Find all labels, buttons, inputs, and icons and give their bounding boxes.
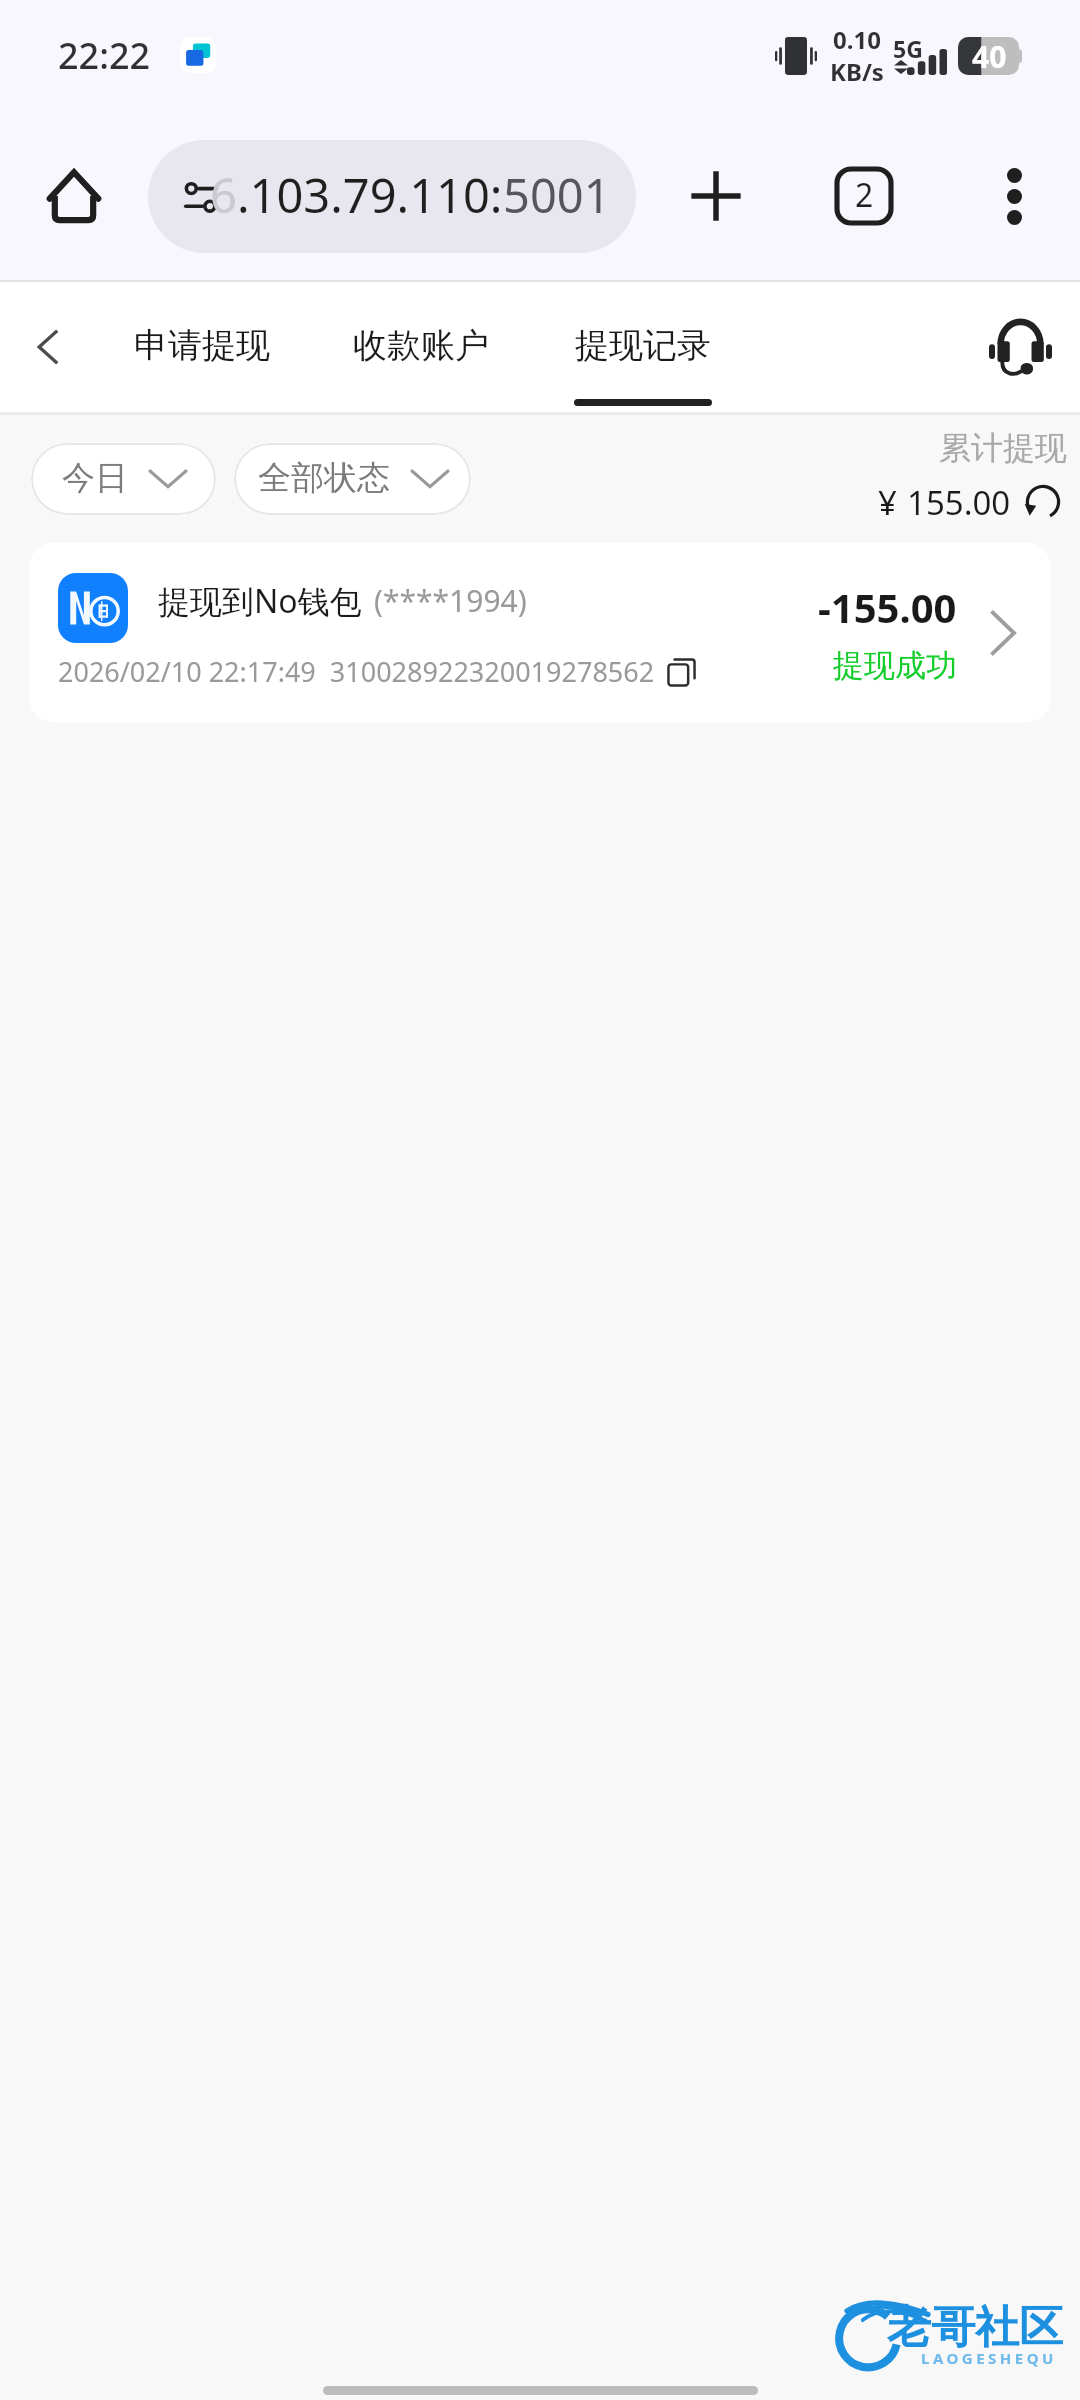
staticText: -155.00 <box>818 580 957 634</box>
staticText: .103.79.110: <box>237 163 503 227</box>
button[interactable]: 收款账户 <box>353 282 489 412</box>
staticText: 提现到No钱包 <box>158 579 362 623</box>
staticText: KB/s <box>830 55 884 88</box>
button[interactable]: More options <box>968 150 1060 242</box>
staticText: LAOGESHEQU <box>921 2348 1057 2368</box>
staticText: 提现记录 <box>575 324 711 367</box>
button[interactable]: 提现到No钱包 <box>30 543 1050 722</box>
staticText: 22:22 <box>58 31 151 80</box>
staticText: 6 <box>210 163 237 227</box>
staticText: ¥ <box>878 480 897 525</box>
button[interactable]: 申请提现 <box>134 282 270 412</box>
button[interactable]: Refresh <box>1019 478 1067 526</box>
staticText: 0.10 <box>833 23 881 56</box>
staticText: 累计提现 <box>939 428 1067 468</box>
staticText: 全部状态 <box>258 457 390 499</box>
staticText: 申请提现 <box>134 324 270 367</box>
button[interactable]: New tab <box>670 150 762 242</box>
button[interactable]: Back <box>10 309 86 385</box>
staticText: 今日 <box>62 457 128 499</box>
staticText: 40 <box>972 36 1007 74</box>
button[interactable]: Copy order number <box>665 656 697 688</box>
staticText: (****1994) <box>374 580 527 621</box>
button[interactable]: 今日 <box>31 443 216 515</box>
button[interactable]: Customer service <box>976 303 1064 391</box>
staticText: 2026/02/10 22:17:49 31002892232001927856… <box>58 653 655 690</box>
staticText: 5G <box>893 33 923 64</box>
button[interactable]: 全部状态 <box>234 443 471 515</box>
staticText: 2 <box>855 173 874 217</box>
staticText: 5001 <box>503 163 611 227</box>
staticText: 收款账户 <box>353 324 489 367</box>
staticText: 提现成功 <box>833 646 957 685</box>
staticText: 老哥社区 <box>887 2300 1063 2355</box>
button[interactable]: Home <box>28 150 120 242</box>
other: Details <box>975 605 1031 661</box>
button[interactable]: Tabs <box>818 150 910 242</box>
button[interactable]: 提现记录 <box>575 282 711 412</box>
staticText: 155.00 <box>907 480 1011 525</box>
button[interactable]: 6 <box>148 140 636 253</box>
